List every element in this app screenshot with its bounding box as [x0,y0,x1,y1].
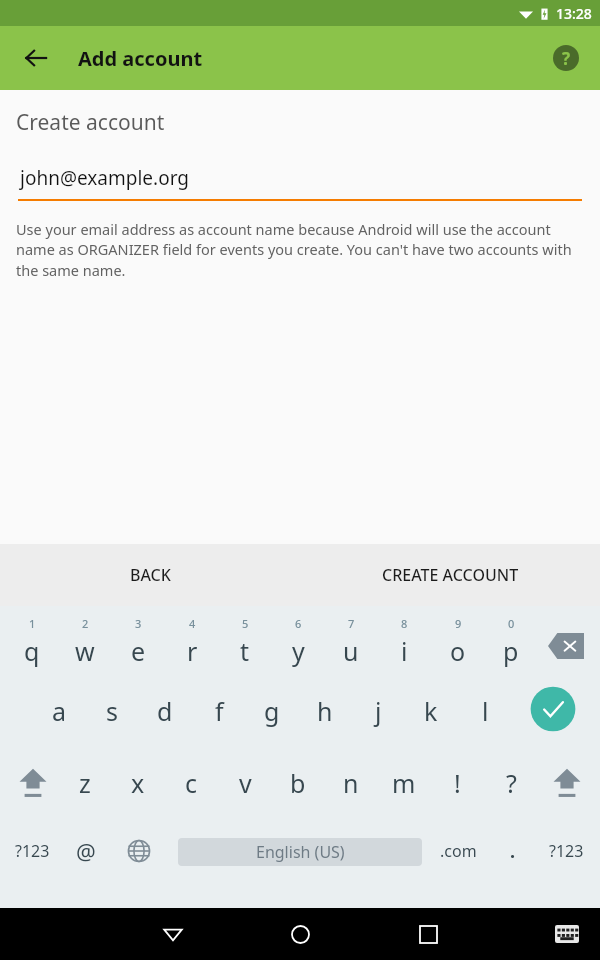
button[interactable]: 8 [378,608,430,676]
staticText: u [343,634,359,668]
staticText: 2 [82,616,89,631]
button[interactable]: v [219,750,271,816]
button[interactable]: Navigate up [12,34,60,82]
staticText: English (US) [256,841,345,863]
staticText: BACK [130,564,171,586]
staticText: 5 [242,616,249,631]
button[interactable]: Recent apps [398,908,458,960]
staticText: v [239,766,252,800]
button[interactable]: Home [270,908,330,960]
button[interactable]: h [299,678,351,744]
staticText: Create account [16,108,165,137]
staticText: d [157,694,173,728]
button[interactable]: 1 [6,608,58,676]
button[interactable]: z [59,750,111,816]
staticText: 13:28 [556,4,592,23]
button[interactable]: n [325,750,377,816]
staticText: Add account [78,45,203,72]
staticText: 6 [295,616,302,631]
button[interactable]: 9 [432,608,484,676]
button[interactable]: Change language [115,826,163,876]
staticText: q [24,634,40,668]
staticText: o [450,634,466,668]
staticText: h [317,694,333,728]
staticText: w [75,634,95,668]
button[interactable]: a [33,678,85,744]
button[interactable]: ? [485,750,537,816]
button[interactable]: ?123 [4,826,60,876]
button[interactable]: 2 [59,608,111,676]
staticText: e [131,634,146,668]
button[interactable]: Help [544,36,588,80]
staticText: Use your email address as account name b… [16,219,584,281]
button[interactable]: BACK [0,544,300,606]
staticText: y [292,634,305,668]
staticText: r [187,634,198,668]
staticText: ? [562,47,571,70]
button[interactable]: l [459,678,511,744]
staticText: CREATE ACCOUNT [382,564,519,586]
button[interactable]: 3 [112,608,164,676]
button[interactable]: 6 [272,608,324,676]
staticText: p [503,634,519,668]
staticText: 4 [189,616,196,631]
staticText: @ [76,836,96,866]
staticText: z [79,766,91,800]
staticText: c [185,766,198,800]
button[interactable]: Delete [540,626,592,666]
button[interactable]: Enter [527,683,579,735]
button[interactable]: ?123 [538,826,594,876]
staticText: k [424,694,438,728]
staticText: f [215,694,224,728]
staticText: x [131,766,145,800]
staticText: n [343,766,359,800]
button[interactable]: Back [143,908,203,960]
staticText: john@example.org [20,165,190,191]
button[interactable]: 0 [485,608,537,676]
staticText: j [375,694,382,728]
button[interactable]: 5 [219,608,271,676]
button[interactable]: Shift [8,756,58,810]
button[interactable]: c [165,750,217,816]
staticText: l [482,694,489,728]
staticText: 9 [455,616,462,631]
button[interactable]: b [272,750,324,816]
staticText: 1 [29,616,36,631]
staticText: t [240,634,250,668]
button[interactable]: k [405,678,457,744]
button[interactable]: s [86,678,138,744]
staticText: a [52,694,67,728]
button[interactable]: CREATE ACCOUNT [300,544,600,606]
staticText: m [392,766,416,800]
button[interactable]: Shift [542,756,592,810]
button[interactable]: ! [431,750,483,816]
staticText: 7 [348,616,355,631]
button[interactable]: g [246,678,298,744]
button[interactable]: j [352,678,404,744]
staticText: ?123 [549,840,584,862]
button[interactable]: m [378,750,430,816]
button[interactable]: Switch keyboard [544,908,590,960]
staticText: b [290,766,306,800]
staticText: .com [440,840,477,862]
button[interactable]: 7 [325,608,377,676]
button[interactable]: .com [430,826,486,876]
staticText: 0 [508,616,515,631]
button[interactable]: 4 [166,608,218,676]
button[interactable]: English (US) [178,838,422,866]
staticText: . [510,839,516,864]
staticText: ?123 [15,840,50,862]
button[interactable]: @ [62,826,110,876]
button[interactable]: . [490,826,536,876]
button[interactable]: d [139,678,191,744]
staticText: i [401,634,408,668]
staticText: s [106,694,118,728]
staticText: ! [454,766,461,800]
button[interactable]: x [112,750,164,816]
button[interactable]: f [193,678,245,744]
staticText: 8 [401,616,408,631]
staticText: ? [506,766,517,800]
staticText: g [264,694,280,728]
staticText: 3 [135,616,142,631]
